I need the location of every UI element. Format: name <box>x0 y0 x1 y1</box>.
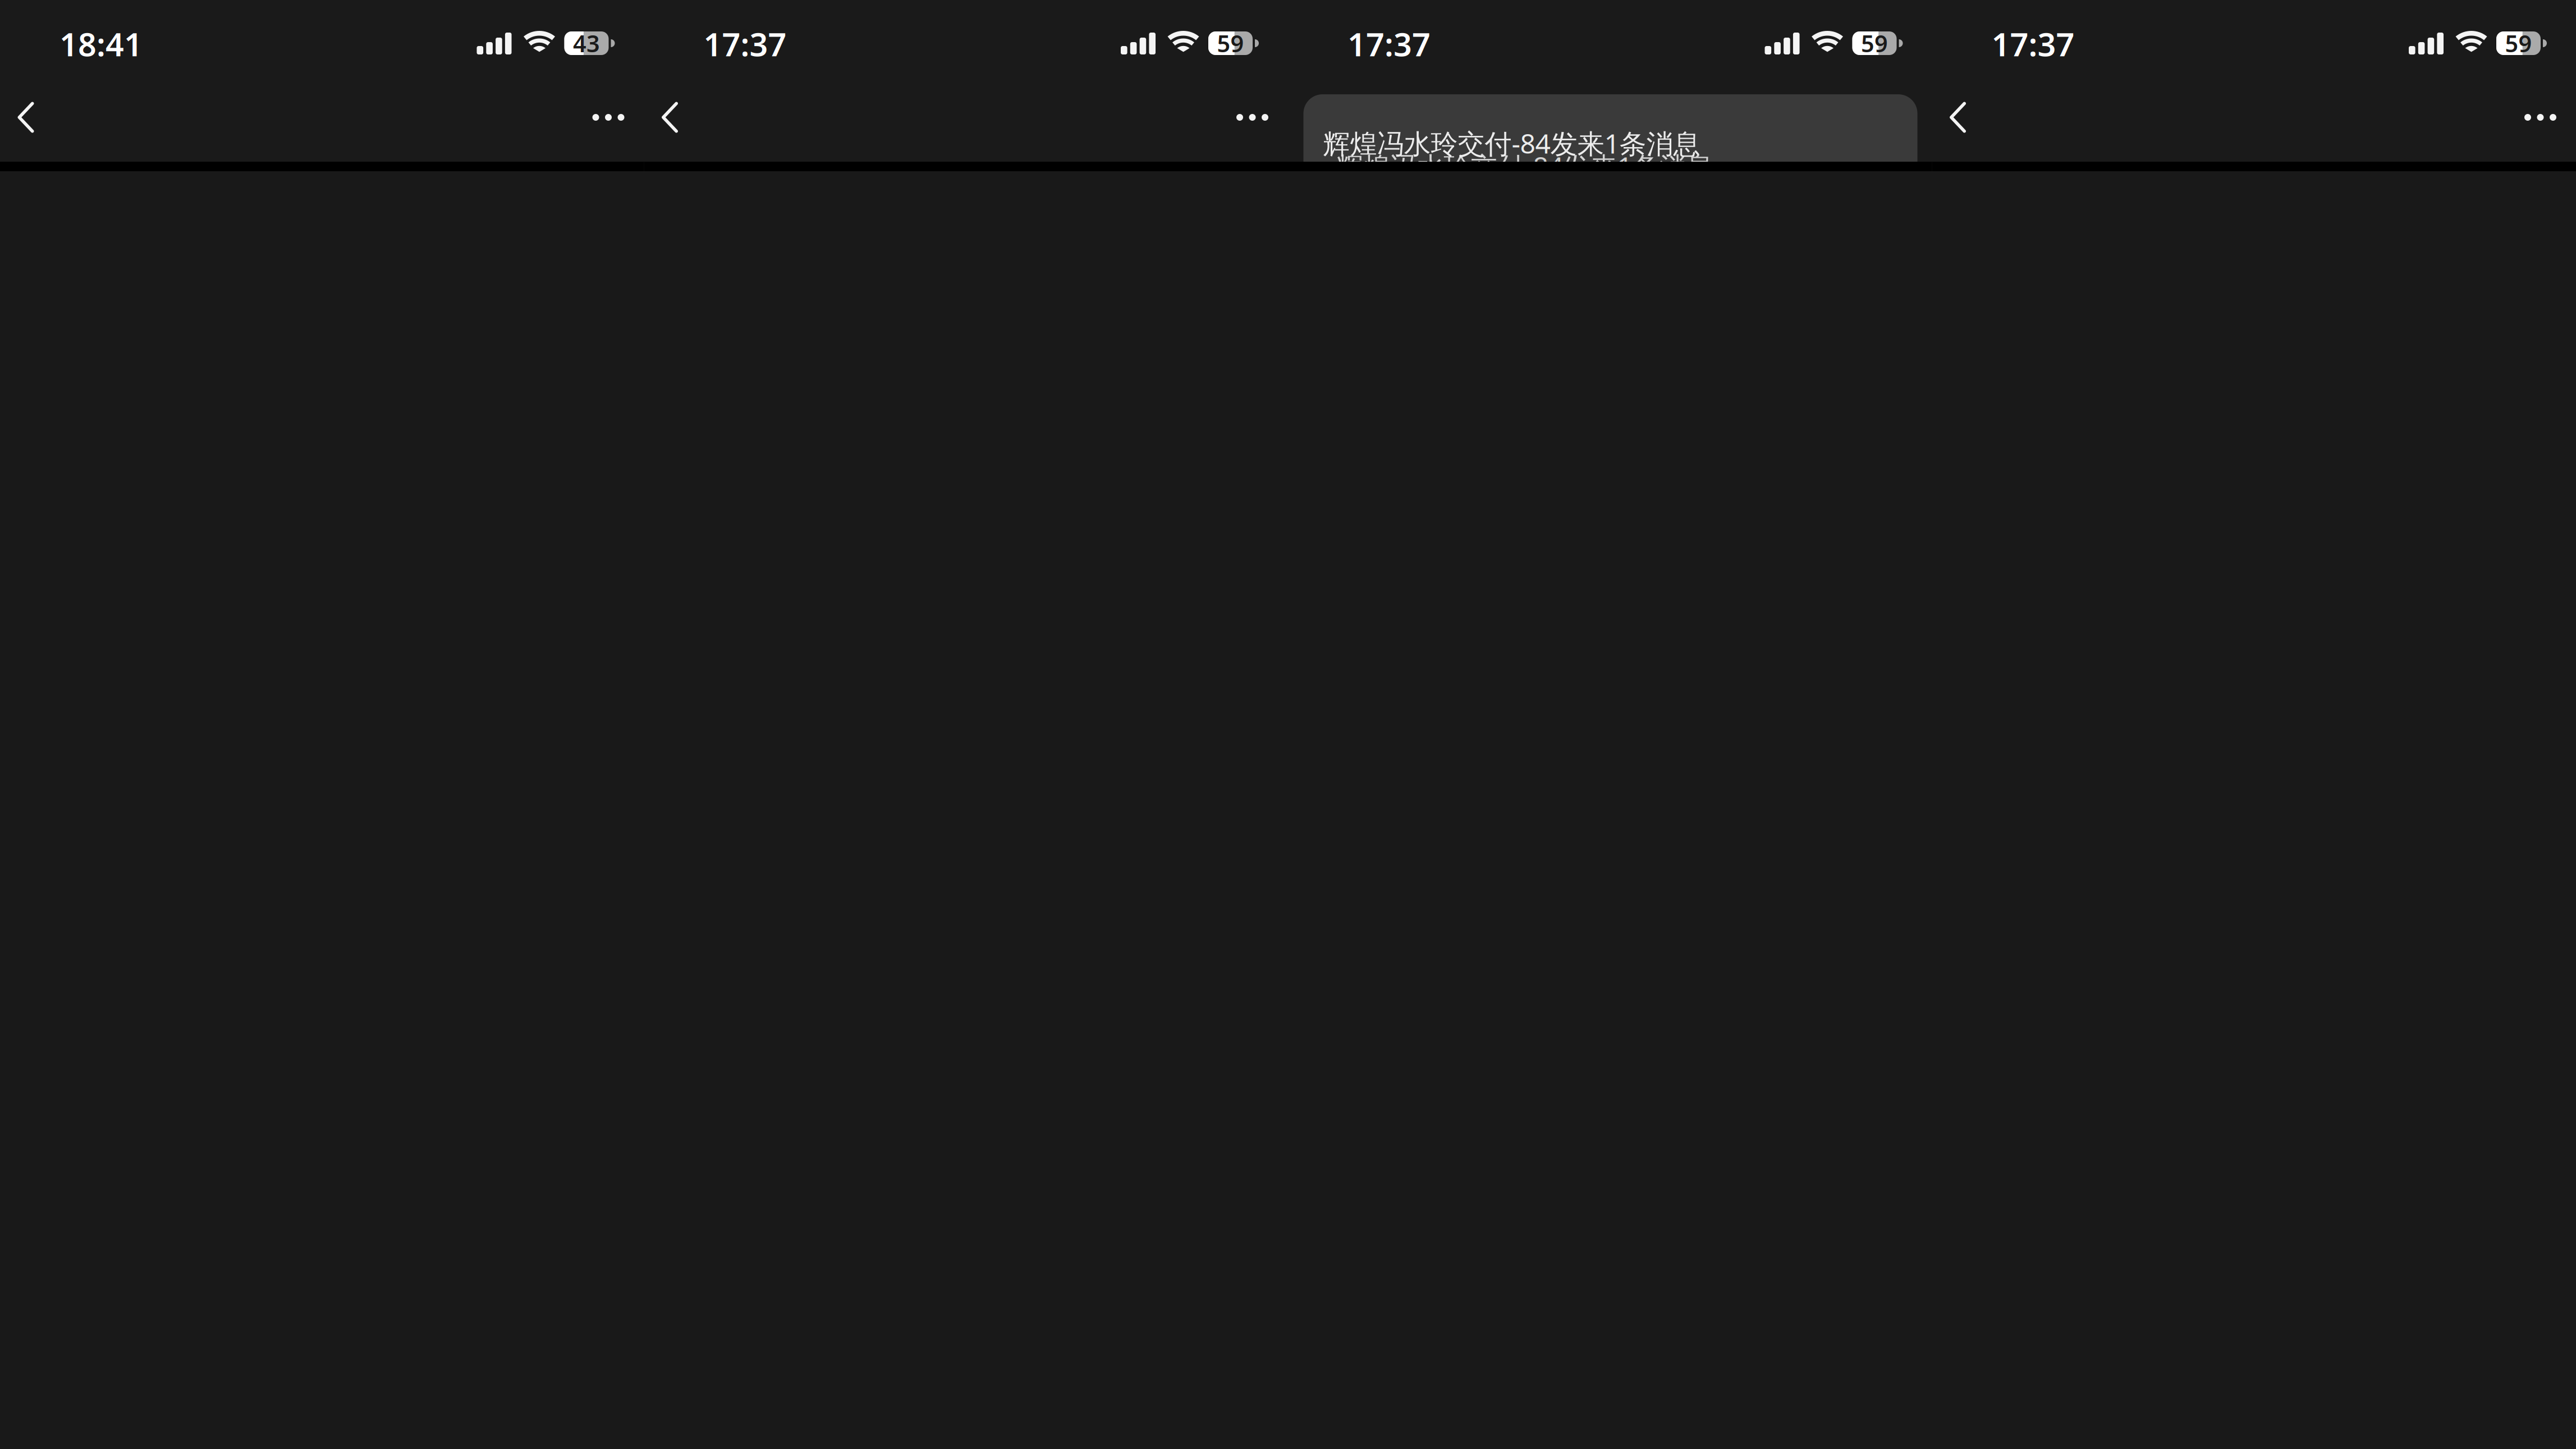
staticText: 辉煌冯水玲交付-84发来1条消息 <box>1336 148 1713 184</box>
staticText: 43 <box>573 28 600 59</box>
button[interactable]: More options <box>1867 88 1926 147</box>
button[interactable]: More options <box>579 88 638 147</box>
button[interactable]: More options <box>2511 88 2570 147</box>
button[interactable]: Back <box>1285 88 1343 147</box>
button[interactable]: Back <box>0 88 55 147</box>
staticText: 59 <box>1861 28 1888 59</box>
staticText: 辉煌冯水玲交付-84发来1条消息 <box>1323 125 1700 161</box>
staticText: 18:41 <box>59 22 143 65</box>
staticText: 17:37 <box>1991 22 2075 65</box>
button[interactable]: More options <box>1223 88 1282 147</box>
button[interactable]: Back <box>641 88 699 147</box>
button[interactable]: Back <box>1929 88 1987 147</box>
staticText: 59 <box>2505 28 2532 59</box>
staticText: 17:37 <box>1347 22 1431 65</box>
staticText: 17:37 <box>703 22 787 65</box>
staticText: 59 <box>1217 28 1244 59</box>
